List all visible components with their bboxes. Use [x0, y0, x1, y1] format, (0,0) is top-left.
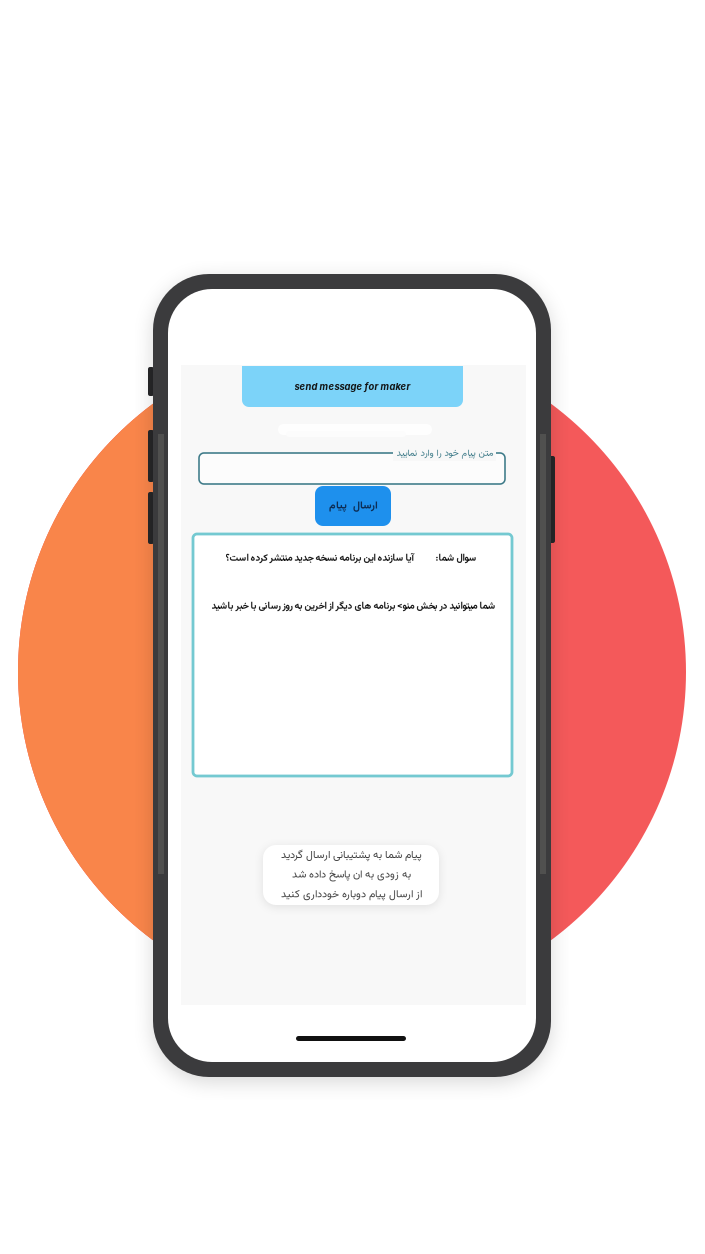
button[interactable]: send message for maker	[242, 366, 463, 407]
staticText: ارسال پیام	[328, 498, 377, 514]
staticText: متن پیام خود را وارد نمایید	[396, 446, 493, 461]
staticText: send message for maker	[294, 381, 410, 392]
staticText: از ارسال پیام دوباره خودداری کنید	[280, 886, 421, 903]
button[interactable]: ارسال پیام	[315, 486, 391, 526]
staticText: پیام شما به پشتیبانی ارسال گردید	[280, 847, 421, 864]
staticText: شما میتوانید در بخش منو> برنامه های دیگر…	[211, 599, 495, 614]
button[interactable]: متن پیام خود را وارد نمایید	[199, 453, 505, 484]
staticText: به زودی به ان پاسخ داده شد	[291, 867, 410, 883]
staticText: سوال شما: آیا سازنده این برنامه نسخه جدی…	[225, 551, 476, 566]
